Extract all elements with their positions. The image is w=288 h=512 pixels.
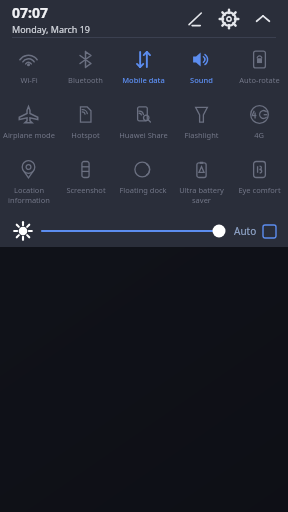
staticText: Bluetooth xyxy=(68,75,103,85)
staticText: Airplane mode xyxy=(3,130,55,140)
button[interactable]: Screenshot xyxy=(57,152,114,214)
button[interactable]: Auto-rotate xyxy=(230,42,288,97)
staticText: Monday, March 19 xyxy=(12,23,91,35)
staticText: 4G xyxy=(254,130,264,140)
button[interactable]: Brightness xyxy=(10,218,36,244)
button[interactable]: Sound xyxy=(172,42,230,97)
button[interactable]: Eye comfort xyxy=(230,152,288,214)
button[interactable]: Collapse xyxy=(246,2,280,36)
staticText: Wi-Fi xyxy=(20,75,38,85)
button[interactable]: Mobile data xyxy=(114,42,172,97)
button[interactable]: Huawei Share xyxy=(114,97,172,152)
staticText: Sound xyxy=(190,75,213,85)
button[interactable]: Auto xyxy=(234,224,276,238)
button[interactable]: Location information xyxy=(0,152,57,214)
button[interactable] xyxy=(42,221,226,241)
staticText: Huawei Share xyxy=(119,130,168,140)
staticText: Auto xyxy=(234,224,257,238)
staticText: Screenshot xyxy=(66,185,106,195)
staticText: Floating dock xyxy=(119,185,167,195)
button[interactable]: Flashlight xyxy=(172,97,230,152)
button[interactable]: Airplane mode xyxy=(0,97,57,152)
staticText: Location information xyxy=(8,185,50,205)
button[interactable]: Floating dock xyxy=(114,152,172,214)
staticText: Auto-rotate xyxy=(239,75,280,85)
staticText: Mobile data xyxy=(122,75,165,85)
staticText: Ultra battery saver xyxy=(179,185,224,205)
staticText: Flashlight xyxy=(184,130,219,140)
button[interactable]: Hotspot xyxy=(57,97,114,152)
button[interactable]: Settings xyxy=(212,2,246,36)
button[interactable]: 4G xyxy=(230,97,288,152)
button[interactable]: Edit xyxy=(178,2,212,36)
button[interactable]: Wi-Fi xyxy=(0,42,57,97)
button[interactable]: Ultra battery saver xyxy=(172,152,230,214)
button[interactable]: Bluetooth xyxy=(57,42,114,97)
staticText: Eye comfort xyxy=(238,185,281,195)
staticText: Hotspot xyxy=(71,130,100,140)
staticText: 07:07 xyxy=(12,3,48,22)
